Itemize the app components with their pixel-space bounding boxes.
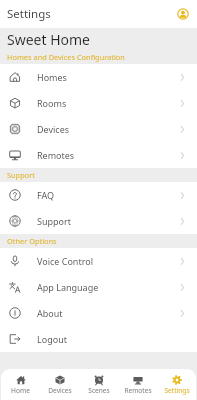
staticText: Devices (37, 123, 70, 135)
button[interactable]: Account (177, 8, 189, 20)
button[interactable]: Scenes (79, 369, 118, 395)
staticText: Support (37, 215, 71, 227)
staticText: Scenes (88, 386, 110, 395)
button[interactable]: Remotes (118, 369, 157, 395)
button[interactable]: Settings (157, 369, 196, 395)
staticText: Rooms (37, 97, 67, 109)
button[interactable]: App Language (0, 274, 197, 300)
staticText: About (37, 307, 63, 319)
button[interactable]: Devices (40, 369, 79, 395)
button[interactable]: Remotes (0, 142, 197, 168)
staticText: App Language (37, 281, 99, 293)
staticText: FAQ (37, 189, 55, 201)
button[interactable]: Support (0, 208, 197, 234)
button[interactable]: FAQ (0, 182, 197, 208)
staticText: Remotes (37, 149, 75, 161)
staticText: Settings (164, 386, 190, 395)
button[interactable]: Logout (0, 326, 197, 352)
staticText: Support (7, 170, 35, 180)
staticText: Other Options (7, 236, 57, 246)
button[interactable]: Devices (0, 116, 197, 142)
button[interactable]: Homes (0, 64, 197, 90)
staticText: Devices (48, 386, 72, 395)
button[interactable]: Rooms (0, 90, 197, 116)
staticText: Voice Control (37, 255, 93, 267)
button[interactable]: Voice Control (0, 248, 197, 274)
staticText: Homes and Devices Configuration (7, 52, 125, 62)
staticText: Sweet Home (7, 30, 91, 49)
button[interactable]: Home (1, 369, 40, 395)
staticText: Logout (37, 333, 67, 345)
staticText: Home (11, 386, 30, 395)
staticText: Settings (7, 6, 51, 22)
staticText: Remotes (124, 386, 152, 395)
button[interactable]: About (0, 300, 197, 326)
staticText: Homes (37, 71, 67, 83)
